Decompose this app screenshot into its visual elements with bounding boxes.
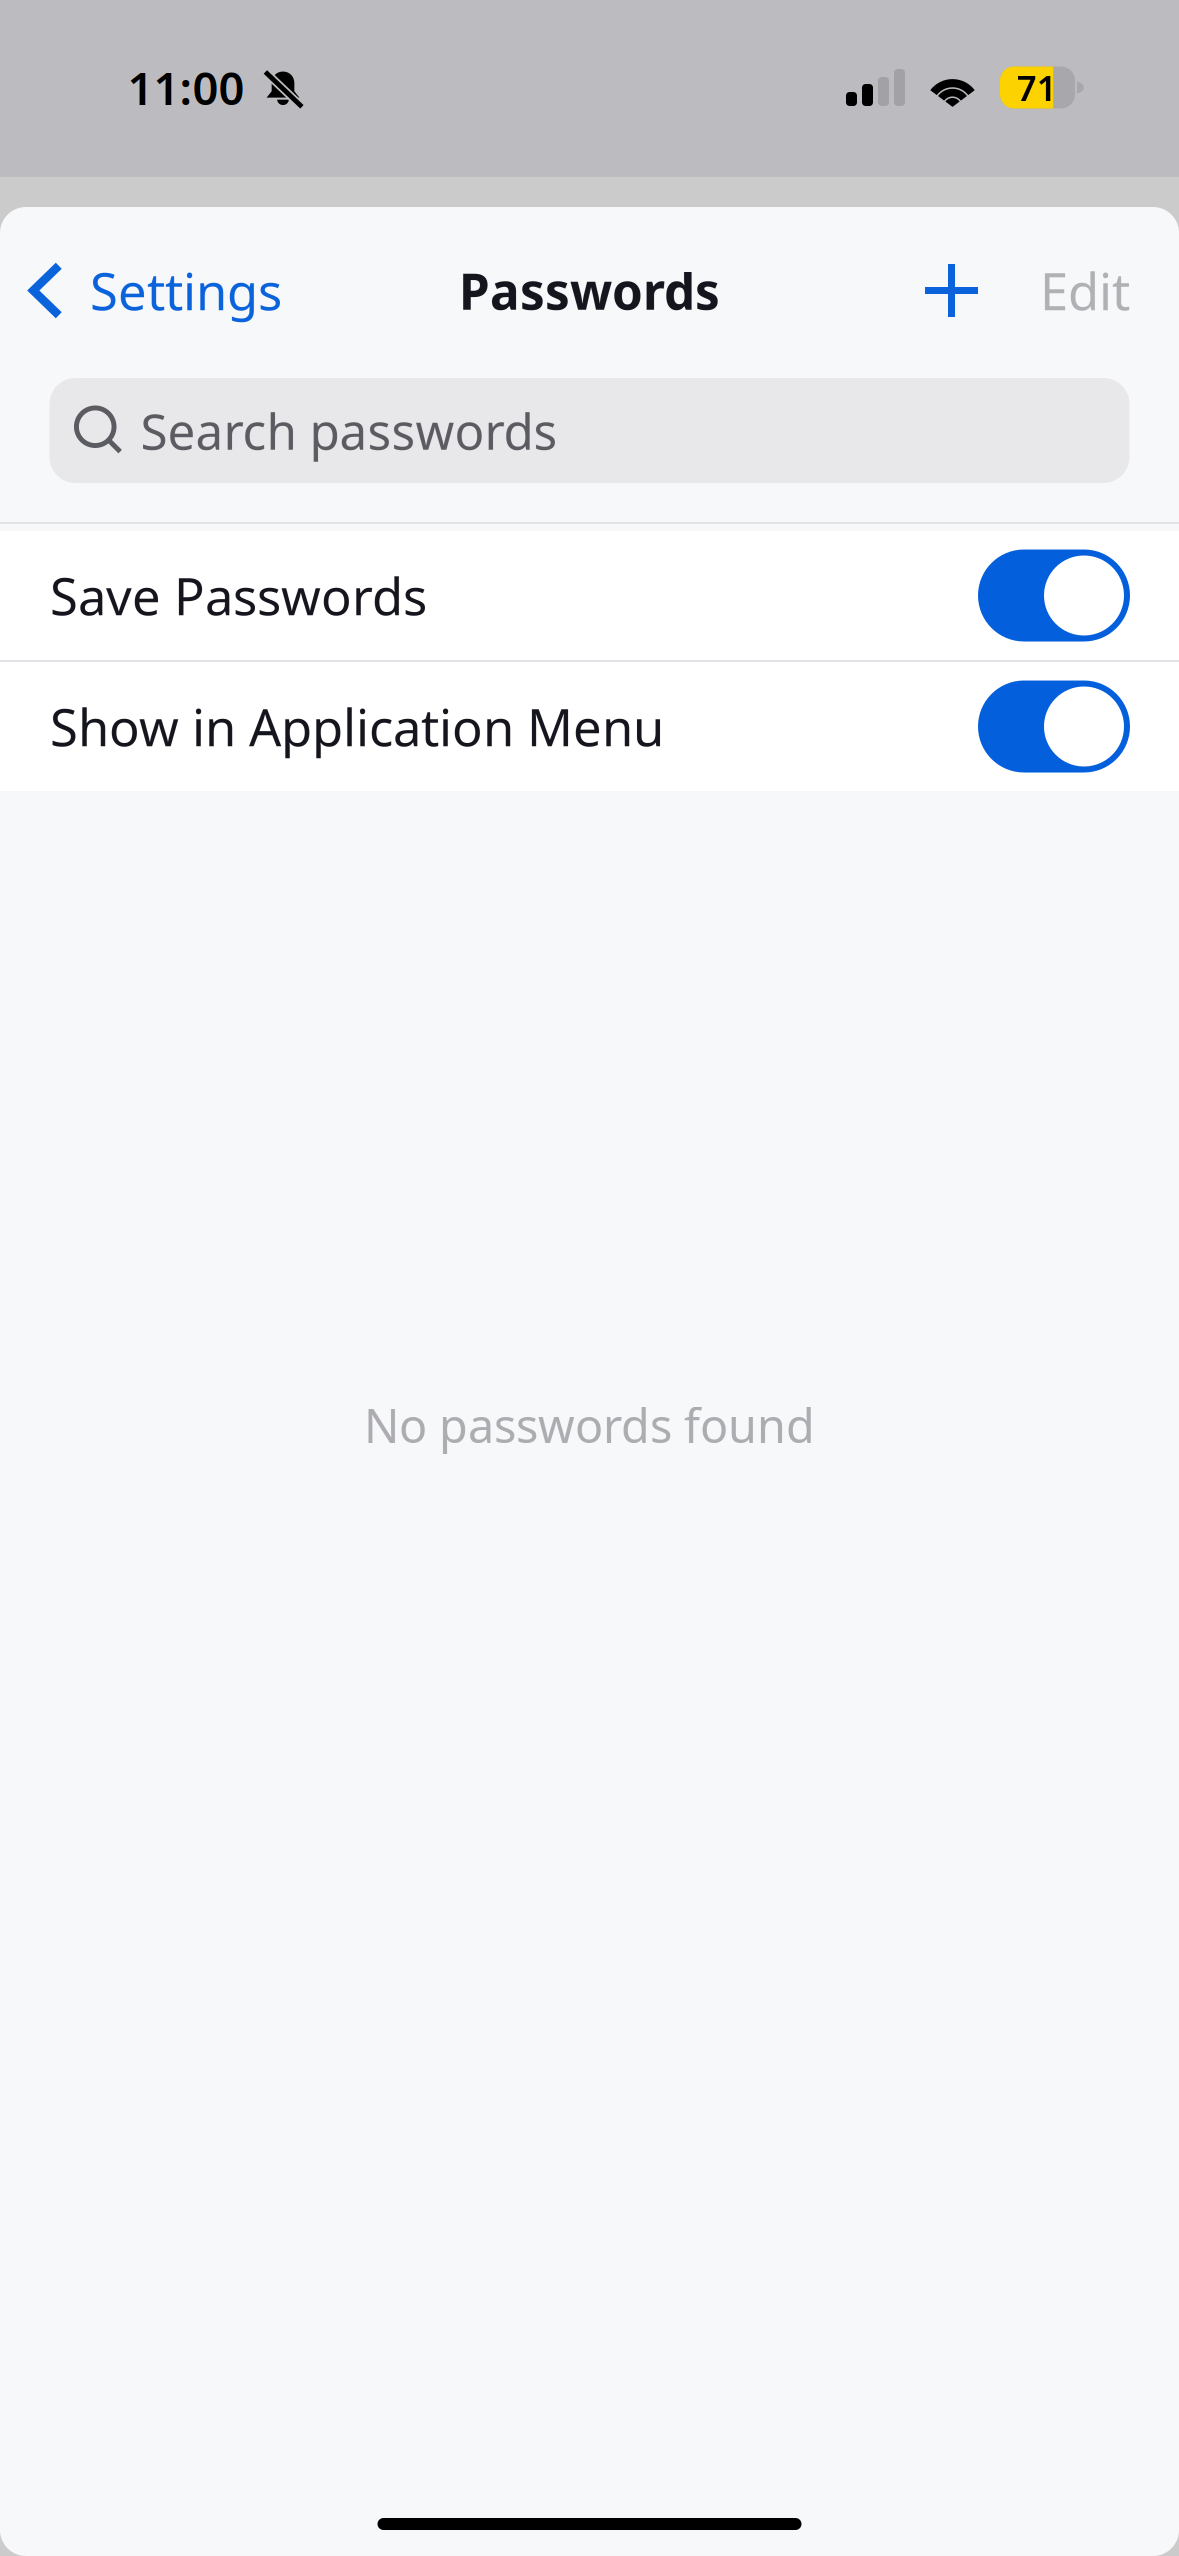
button[interactable]: Add password — [911, 234, 1016, 346]
staticText: Edit — [1040, 257, 1130, 324]
staticText: Show in Application Menu — [50, 693, 664, 760]
button[interactable]: Save Passwords — [0, 531, 1179, 660]
button[interactable]: Search passwords — [49, 378, 1129, 483]
button[interactable]: Show in Application Menu — [0, 662, 1179, 791]
button[interactable]: Settings — [0, 234, 302, 346]
staticText: 71 — [1017, 64, 1057, 110]
staticText: Save Passwords — [50, 562, 427, 629]
button[interactable]: Edit — [1016, 234, 1179, 346]
staticText: Settings — [90, 257, 282, 324]
staticText: 11:00 — [127, 57, 244, 118]
staticText: No passwords found — [364, 1394, 815, 1456]
staticText: Passwords — [459, 258, 720, 323]
staticText: Search passwords — [140, 398, 557, 463]
